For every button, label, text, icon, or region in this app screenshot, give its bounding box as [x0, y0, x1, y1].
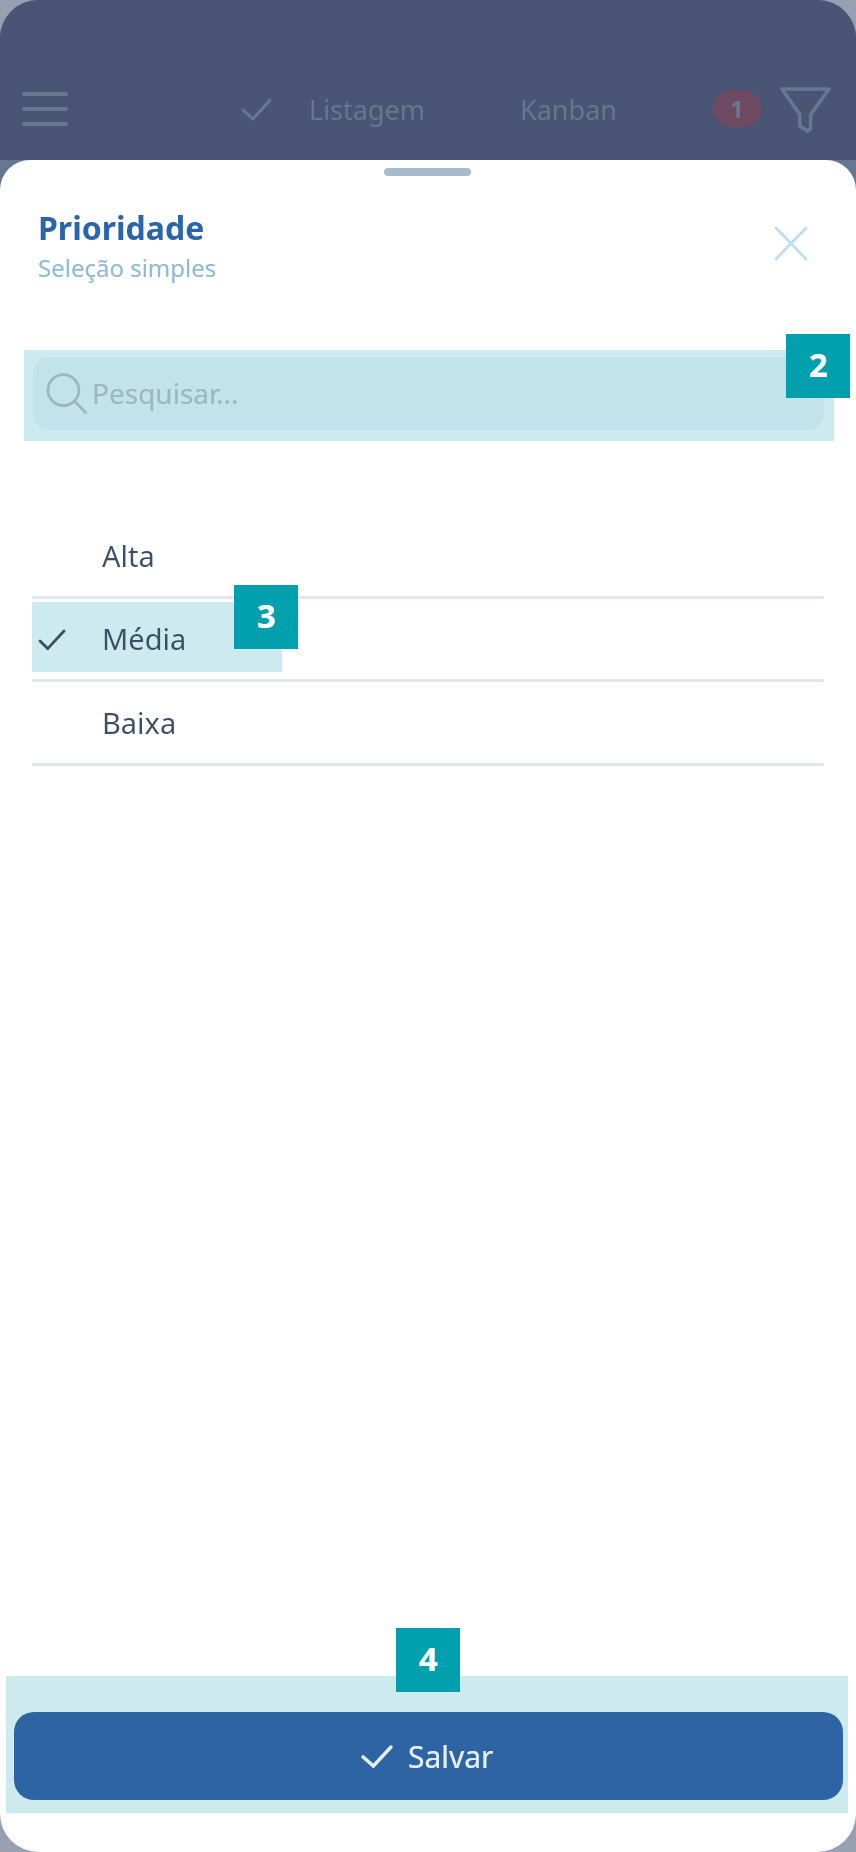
button[interactable]: Baixa — [32, 680, 824, 764]
button[interactable]: Alta — [32, 513, 824, 597]
staticText: Listagem — [309, 91, 426, 128]
button[interactable]: Pesquisar... — [33, 357, 824, 430]
button[interactable]: Fechar — [758, 210, 824, 276]
staticText: Salvar — [408, 1736, 494, 1777]
staticText: Seleção simples — [38, 251, 217, 284]
staticText: 3 — [257, 593, 276, 638]
staticText: Alta — [102, 536, 155, 575]
button[interactable]: Salvar — [14, 1712, 843, 1800]
staticText: 4 — [419, 1636, 438, 1681]
button[interactable]: Média — [32, 596, 824, 680]
staticText: Kanban — [520, 91, 617, 128]
button[interactable]: Menu — [8, 73, 82, 145]
button[interactable]: Kanban — [520, 76, 617, 142]
staticText: Baixa — [102, 703, 177, 742]
button[interactable]: Filtrar — [770, 80, 840, 140]
staticText: 2 — [809, 342, 828, 387]
staticText: 1 — [730, 92, 744, 125]
button[interactable]: Listagem — [243, 76, 426, 142]
staticText: Pesquisar... — [92, 374, 239, 412]
button[interactable]: 1 filtro ativo — [713, 90, 761, 127]
staticText: Prioridade — [38, 206, 205, 250]
staticText: Média — [102, 619, 187, 658]
